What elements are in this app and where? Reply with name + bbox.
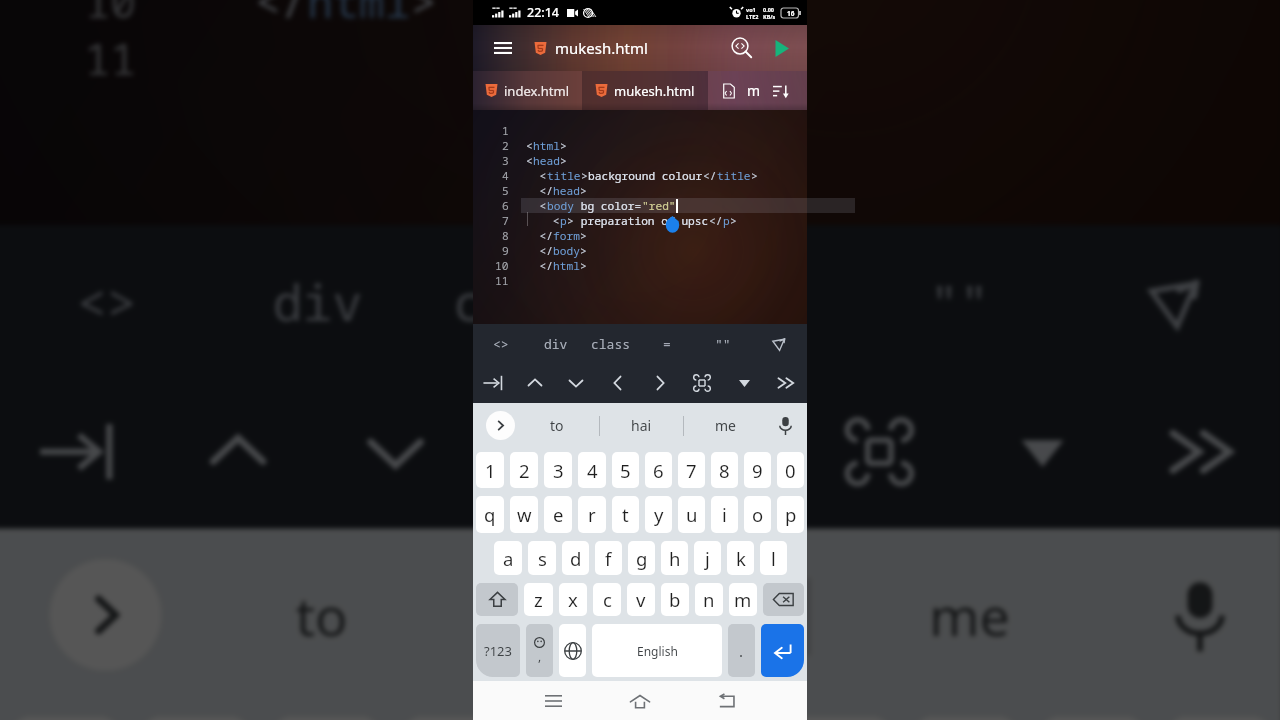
staticText: index.html [504,82,570,100]
button[interactable]: s [528,541,556,575]
button[interactable]: o [744,496,771,533]
button[interactable]: Move down [555,363,597,403]
button[interactable]: English [592,624,722,677]
button[interactable]: to [515,403,599,448]
button[interactable]: Emoji [526,624,553,677]
button[interactable]: = [639,324,695,363]
button[interactable]: 1 [476,452,504,488]
button[interactable]: Home [622,683,658,719]
staticText: > [567,213,574,228]
button[interactable]: Show more suggestions [486,411,515,440]
button[interactable]: Command [681,363,723,403]
button[interactable]: l [760,541,787,575]
button[interactable]: c [593,583,621,616]
staticText: class [591,335,631,353]
button[interactable]: u [678,496,705,533]
button[interactable]: y [645,496,672,533]
button[interactable]: Select text [751,324,807,363]
staticText: , [538,648,542,664]
staticText: 10 [84,0,138,29]
button[interactable]: Move left [597,363,639,403]
button[interactable]: hai [600,403,683,448]
staticText: q [484,502,496,527]
button[interactable]: 8 [711,452,738,488]
button[interactable]: m [729,583,757,616]
button[interactable]: e [544,496,572,533]
button[interactable]: n [695,583,723,616]
button[interactable]: Shift [476,583,518,616]
button[interactable]: Menu [481,25,525,71]
staticText: 1 [502,123,509,138]
staticText: s [538,546,547,571]
button[interactable]: h [661,541,688,575]
button[interactable]: b [661,583,689,616]
button[interactable]: 4 [578,452,606,488]
staticText: html [553,258,580,273]
button[interactable]: 5 [612,452,639,488]
button[interactable]: 7 [678,452,705,488]
staticText: div [273,267,365,336]
staticText: "red" [642,198,676,213]
button[interactable]: Tab [473,363,514,403]
button[interactable]: t [612,496,639,533]
button[interactable]: 9 [744,452,771,488]
button[interactable]: class [583,324,639,363]
button[interactable]: 2 [510,452,538,488]
button[interactable]: Move right [639,363,681,403]
button[interactable]: Sort [769,79,793,103]
button[interactable]: index.html [473,71,582,110]
staticText: </ [703,168,717,183]
button[interactable]: a [494,541,522,575]
button[interactable]: Change language [559,624,586,677]
button[interactable]: Forward [765,363,807,403]
staticText: > [560,153,567,168]
button[interactable]: r [578,496,606,533]
button[interactable]: Search code [721,27,763,69]
button[interactable]: mukesh.html [582,71,708,110]
staticText: > [751,168,758,183]
button[interactable]: New file [717,79,741,103]
button[interactable]: div [528,324,583,363]
button[interactable]: ?123 [476,624,520,677]
staticText: 0.00 [763,6,774,13]
button[interactable]: x [559,583,587,616]
button[interactable]: Recent apps [535,683,571,719]
staticText: p [785,502,797,527]
staticText: < [526,213,560,228]
staticText: 11 [495,273,509,288]
button[interactable]: z [524,583,553,616]
button[interactable]: Back [709,683,745,719]
button[interactable]: 0 [777,452,804,488]
button[interactable]: Move up [514,363,555,403]
button[interactable]: v [627,583,655,616]
button[interactable]: d [562,541,589,575]
staticText: 11 [84,29,138,87]
button[interactable]: w [510,496,538,533]
staticText: h [669,546,681,571]
button[interactable]: 6 [645,452,672,488]
button[interactable]: p [777,496,804,533]
staticText: 6 [502,198,509,213]
staticText: > [730,213,737,228]
staticText: 7 [686,458,697,483]
button[interactable]: More [723,363,765,403]
button[interactable]: j [694,541,721,575]
button[interactable]: Backspace [763,583,804,616]
button[interactable]: me [684,403,767,448]
button[interactable]: Enter [761,624,804,677]
staticText: < [526,168,547,183]
button[interactable]: 3 [544,452,572,488]
staticText: w [517,502,532,527]
button[interactable]: f [595,541,622,575]
button[interactable]: g [628,541,655,575]
button[interactable]: . [728,624,755,677]
button[interactable]: "" [695,324,751,363]
button[interactable]: Run [763,30,799,66]
staticText: > [581,168,588,183]
button[interactable]: <> [473,324,528,363]
button[interactable]: k [727,541,754,575]
button[interactable]: i [711,496,738,533]
staticText: bg color= [574,198,642,213]
button[interactable]: Voice input [767,408,803,444]
button[interactable]: q [476,496,504,533]
